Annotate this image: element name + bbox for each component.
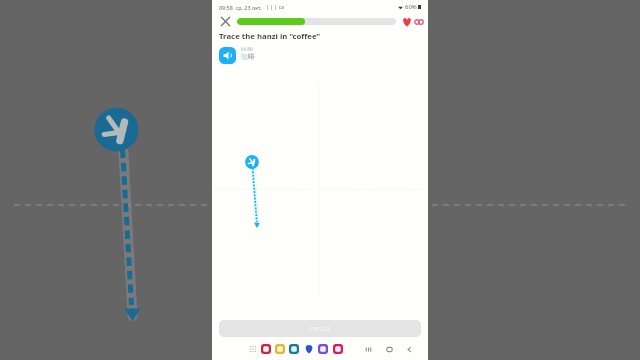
staticText: ❘❘❘ са <box>265 4 285 11</box>
staticText: kā fēi <box>241 46 253 52</box>
button[interactable]: App 5 <box>318 344 328 354</box>
button[interactable]: App 3 <box>289 344 299 354</box>
button[interactable]: App 4 <box>304 344 314 354</box>
button[interactable]: Play audio <box>219 47 236 64</box>
button[interactable]: Recents <box>364 345 373 354</box>
button[interactable]: Home <box>385 345 394 354</box>
button[interactable]: App 6 <box>333 344 343 354</box>
staticText: 60% <box>405 3 417 11</box>
button[interactable]: App 2 <box>275 344 285 354</box>
button[interactable]: Back <box>405 345 414 354</box>
button[interactable]: Close <box>220 16 231 27</box>
staticText: Trace the hanzi in “coffee” <box>219 31 320 42</box>
staticText: CHECK <box>309 325 332 333</box>
staticText: 啡 <box>248 52 255 61</box>
button[interactable]: All apps <box>249 345 257 353</box>
staticText: 咖 <box>241 52 248 61</box>
button[interactable]: App 1 <box>261 344 271 354</box>
staticText: 09:58 ср, 23 окт. <box>219 4 262 11</box>
